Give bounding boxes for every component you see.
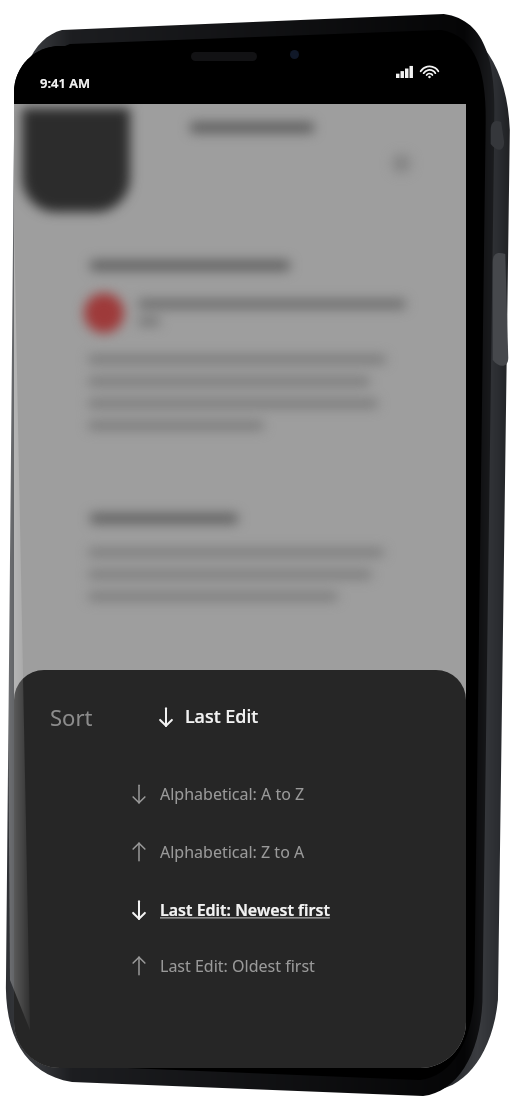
button[interactable]: Descending: [14, 777, 466, 811]
other: Descending: [132, 900, 146, 920]
other: Descending: [132, 784, 146, 804]
staticText: Last Edit: [185, 704, 259, 729]
button[interactable]: Descending: [153, 700, 265, 733]
staticText: Last Edit: Oldest first: [160, 955, 315, 977]
staticText: Sort: [50, 702, 93, 732]
staticText: 9:41 AM: [40, 74, 91, 92]
other: Ascending: [132, 842, 146, 862]
other: Descending: [159, 707, 173, 727]
button[interactable]: Ascending: [14, 835, 466, 869]
staticText: Alphabetical: A to Z: [160, 783, 305, 805]
staticText: Last Edit: Newest first: [160, 899, 330, 921]
other: Ascending: [132, 956, 146, 976]
button[interactable]: Ascending: [14, 949, 466, 983]
button[interactable]: Descending: [14, 893, 466, 927]
staticText: Alphabetical: Z to A: [160, 841, 305, 863]
